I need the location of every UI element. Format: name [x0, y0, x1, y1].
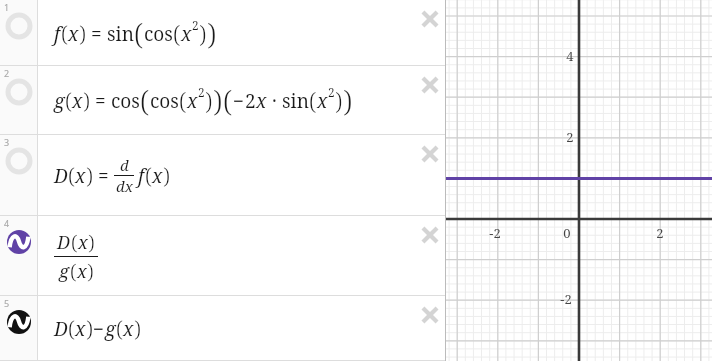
staticText: ) [213, 81, 223, 120]
staticText: 4 [4, 217, 10, 229]
button[interactable]: Toggle graph 3 [5, 147, 32, 174]
staticText: · [267, 88, 282, 114]
staticText: sin [107, 21, 134, 47]
staticText: ) [86, 161, 93, 191]
staticText: ( [71, 228, 78, 256]
staticText: = [93, 163, 114, 189]
staticText: x [181, 21, 192, 47]
staticText: x [123, 316, 134, 342]
staticText: ( [68, 314, 75, 344]
staticText: cos [150, 88, 179, 114]
staticText: x [72, 88, 83, 114]
staticText: 0 [563, 224, 571, 242]
staticText: ( [134, 14, 144, 53]
staticText: ) [199, 18, 207, 49]
staticText: 2 [192, 17, 199, 33]
staticText: ) [207, 14, 217, 53]
staticText: ) [79, 19, 86, 49]
staticText: cos [144, 21, 173, 47]
staticText: = [86, 21, 107, 47]
staticText: ) [83, 86, 90, 116]
staticText: f [54, 21, 61, 47]
staticText: ) [86, 314, 93, 344]
button[interactable]: Delete expression [418, 142, 441, 165]
staticText: D [54, 316, 68, 342]
staticText: ( [223, 81, 233, 120]
staticText: f [138, 163, 145, 189]
staticText: 5 [4, 297, 10, 309]
staticText: ) [87, 257, 94, 285]
button[interactable]: Delete expression [418, 223, 441, 246]
staticText: ) [343, 81, 353, 120]
button[interactable]: Delete expression [418, 73, 441, 96]
other: Delete expression [419, 224, 441, 246]
staticText: ) [163, 161, 170, 191]
button[interactable]: 4 [0, 216, 446, 296]
other: Delete expression [419, 304, 441, 326]
button[interactable]: 2 [0, 66, 446, 135]
other: Delete expression [419, 74, 441, 96]
button[interactable]: 5 [0, 296, 446, 361]
staticText: − [93, 316, 105, 342]
staticText: D [57, 230, 71, 255]
staticText: g [54, 88, 65, 114]
other: Delete expression [419, 8, 441, 30]
staticText: -2 [560, 290, 572, 308]
staticText: 2 [566, 128, 574, 146]
staticText: 2 [656, 224, 664, 242]
staticText: − [233, 88, 245, 114]
staticText: ) [205, 85, 213, 116]
staticText: ( [145, 161, 152, 191]
staticText: ( [173, 18, 181, 49]
staticText: 2 [328, 84, 335, 100]
staticText: x [77, 259, 87, 284]
button[interactable]: 3 [0, 135, 446, 216]
staticText: 3 [4, 136, 10, 148]
staticText: ( [116, 314, 123, 344]
staticText: x [317, 88, 328, 114]
staticText: 1 [4, 1, 10, 13]
staticText: ( [61, 19, 68, 49]
staticText: ) [335, 85, 343, 116]
staticText: sin [282, 88, 309, 114]
staticText: g [59, 259, 70, 284]
staticText: -2 [489, 224, 501, 242]
staticText: ( [179, 85, 187, 116]
button[interactable]: Toggle graph 1 [5, 12, 32, 39]
staticText: g [105, 316, 116, 342]
staticText: x [256, 88, 267, 114]
staticText: 2 [4, 67, 10, 79]
staticText: x [75, 316, 86, 342]
button[interactable]: Delete expression [418, 7, 441, 30]
staticText: ( [65, 86, 72, 116]
staticText: = [90, 88, 111, 114]
staticText: x [75, 163, 86, 189]
staticText: x [187, 88, 198, 114]
staticText: ) [134, 314, 141, 344]
other: Delete expression [419, 143, 441, 165]
button[interactable]: Toggle graph 5 [5, 308, 32, 335]
staticText: D [54, 163, 68, 189]
staticText: ( [68, 161, 75, 191]
staticText: 2 [245, 88, 256, 114]
staticText: x [78, 230, 88, 255]
staticText: ) [88, 228, 95, 256]
staticText: ( [140, 81, 150, 120]
staticText: d [120, 155, 129, 175]
staticText: 2 [198, 84, 205, 100]
button[interactable]: 1 [0, 0, 446, 66]
staticText: ( [309, 85, 317, 116]
button[interactable]: Delete expression [418, 303, 441, 326]
button[interactable]: Toggle graph 4 [5, 228, 32, 255]
staticText: x [68, 21, 79, 47]
staticText: x [152, 163, 163, 189]
staticText: ( [70, 257, 77, 285]
staticText: 4 [566, 47, 574, 65]
button[interactable]: Toggle graph 2 [5, 78, 32, 105]
staticText: dx [116, 176, 133, 196]
staticText: cos [111, 88, 140, 114]
